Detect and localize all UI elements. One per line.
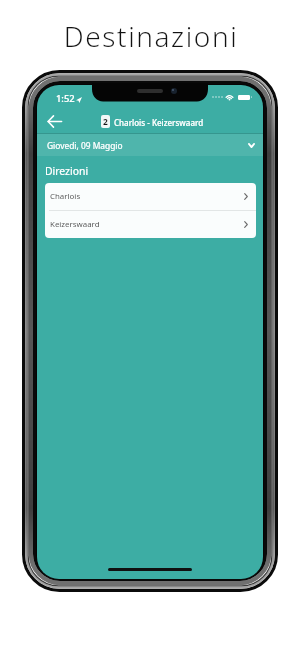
button[interactable]: Keizerswaard <box>45 211 256 238</box>
staticText: Charlois <box>50 191 81 202</box>
staticText: 2 <box>103 116 108 127</box>
staticText: Destinazioni <box>1 17 300 55</box>
button[interactable]: Giovedi, 09 Maggio <box>37 134 263 156</box>
staticText: Giovedi, 09 Maggio <box>47 140 123 151</box>
staticText: Direzioni <box>45 164 89 178</box>
staticText: Keizerswaard <box>50 219 100 230</box>
button[interactable]: Back <box>42 109 66 133</box>
button[interactable]: Charlois <box>45 183 256 210</box>
staticText: Charlois - Keizerswaard <box>114 117 204 128</box>
staticText: 1:52 <box>56 92 75 105</box>
